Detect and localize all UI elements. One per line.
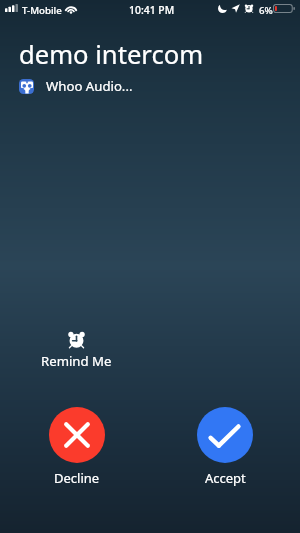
button[interactable]: Decline [37,407,117,487]
staticText: 10:41 PM [129,3,175,17]
staticText: Remind Me [41,352,112,370]
staticText: Decline [54,469,100,487]
button[interactable]: Accept [185,407,265,487]
staticText: Accept [205,469,246,487]
staticText: demo intercom [19,37,204,72]
staticText: 6% [259,4,273,17]
button[interactable]: Remind Me [34,328,118,370]
staticText: T-Mobile [22,4,62,17]
staticText: Whoo Audio... [46,77,133,95]
